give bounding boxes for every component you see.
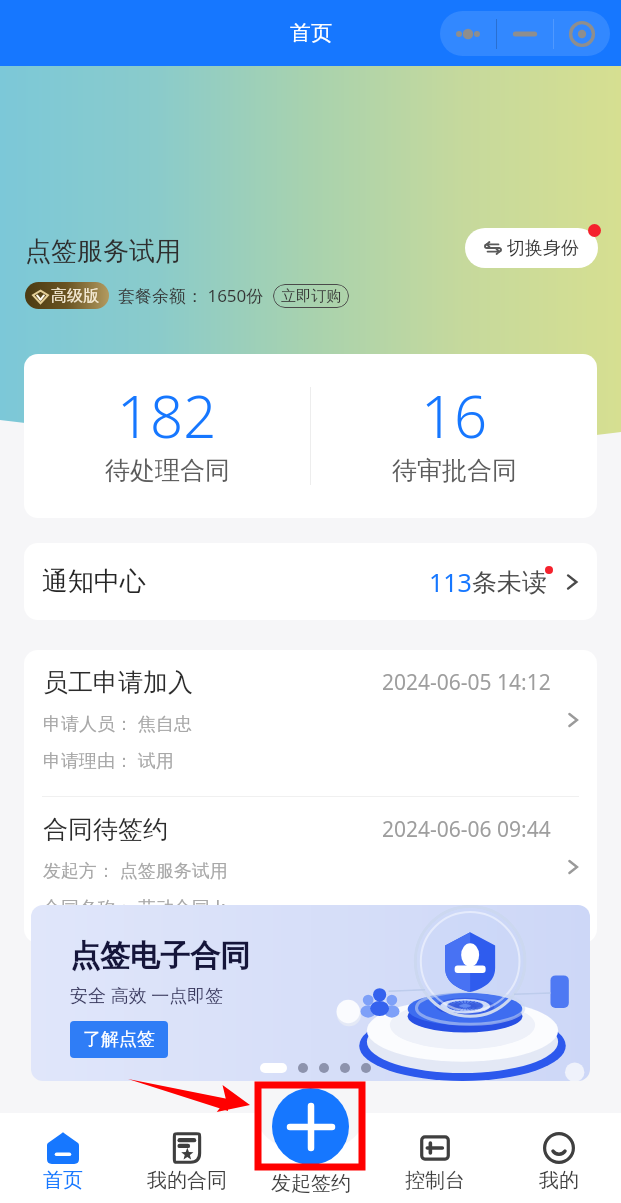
staticText: 点签服务试用 — [25, 235, 181, 268]
staticText: 申请理由： 试用 — [43, 748, 174, 773]
button[interactable]: 我的合同 — [125, 1113, 249, 1203]
staticText: 16 — [421, 376, 488, 455]
staticText: 控制台 — [405, 1168, 465, 1193]
button[interactable]: 控制台 — [373, 1113, 497, 1203]
button[interactable]: 发起签约 — [251, 1161, 371, 1203]
staticText: 点签电子合同 — [70, 937, 250, 975]
button[interactable]: 合同待签约 — [24, 797, 597, 943]
staticText: 首页 — [290, 20, 332, 46]
staticText: 2024-06-06 09:44 — [382, 815, 551, 844]
staticText: 了解点签 — [83, 1028, 155, 1051]
button[interactable]: 点签电子合同 — [31, 905, 590, 1081]
button[interactable]: 首页 — [0, 1113, 125, 1203]
button[interactable]: More — [440, 11, 496, 56]
staticText: 立即订购 — [281, 287, 341, 306]
button[interactable]: Close — [554, 11, 610, 56]
button[interactable]: 立即订购 — [273, 284, 349, 308]
staticText: 待处理合同 — [105, 455, 230, 486]
staticText: 通知中心 — [42, 565, 146, 598]
staticText: 安全 高效 一点即签 — [70, 983, 224, 1008]
staticText: 首页 — [43, 1168, 83, 1193]
staticText: 待审批合同 — [392, 455, 517, 486]
button[interactable]: 员工申请加入 — [24, 650, 597, 796]
button[interactable]: 16 — [311, 381, 597, 491]
staticText: 我的 — [539, 1168, 579, 1193]
staticText: 发起方： 点签服务试用 — [43, 858, 228, 883]
staticText: 高级版 — [51, 286, 99, 306]
staticText: 我的合同 — [147, 1168, 227, 1193]
staticText: 员工申请加入 — [43, 667, 193, 698]
button[interactable]: Minimize — [497, 11, 553, 56]
staticText: 切换身份 — [507, 237, 579, 260]
staticText: 合同待签约 — [43, 814, 168, 845]
staticText: 合同名称： 劳动合同-k — [43, 895, 226, 920]
staticText: 2024-06-05 14:12 — [382, 668, 551, 697]
staticText: 申请人员： 焦自忠 — [43, 711, 192, 736]
button[interactable]: 通知中心 — [24, 543, 597, 620]
button[interactable]: 发起签约 — [272, 1088, 349, 1165]
staticText: 113 — [429, 565, 472, 599]
staticText: 套餐余额： 1650份 — [118, 284, 264, 307]
staticText: 条未读 — [472, 567, 547, 598]
staticText: 发起签约 — [271, 1171, 351, 1196]
button[interactable]: 切换身份 — [465, 228, 598, 268]
button[interactable]: 182 — [24, 381, 310, 491]
button[interactable]: 我的 — [497, 1113, 621, 1203]
button[interactable]: 了解点签 — [70, 1021, 168, 1058]
staticText: 182 — [117, 376, 217, 455]
